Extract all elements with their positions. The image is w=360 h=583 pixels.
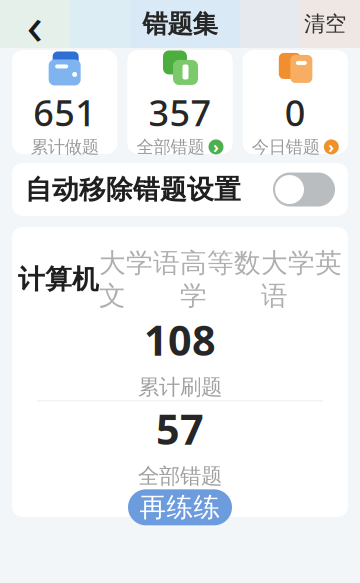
button[interactable]: 清空	[298, 2, 352, 46]
button[interactable]: 高等数学	[180, 247, 261, 312]
staticText: 清空	[304, 11, 346, 37]
staticText: ›	[213, 136, 219, 157]
staticText: 高等数学	[180, 247, 261, 312]
button[interactable]: 0	[243, 50, 348, 154]
staticText: 计算机	[18, 263, 99, 296]
button[interactable]: 自动移除错题设置	[12, 163, 348, 216]
staticText: 108	[144, 312, 216, 367]
button[interactable]: 返回	[8, 2, 62, 46]
button[interactable]: 651	[12, 50, 117, 154]
staticText: 大学英语	[261, 247, 342, 312]
staticText: ‹	[26, 0, 43, 59]
staticText: 再练练	[139, 491, 220, 524]
button[interactable]: 大学英语	[261, 247, 342, 312]
staticText: 大学语文	[99, 247, 180, 312]
staticText: 全部错题	[136, 136, 204, 158]
staticText: 错题集	[142, 8, 217, 39]
button[interactable]: 大学语文	[99, 247, 180, 312]
staticText: 累计刷题	[138, 374, 222, 400]
staticText: 57	[156, 401, 204, 456]
staticText: ›	[328, 136, 334, 157]
staticText: 357	[148, 88, 211, 136]
staticText: 累计做题	[31, 136, 99, 158]
staticText: 0	[285, 88, 306, 136]
staticText: 651	[33, 88, 96, 136]
staticText: 自动移除错题设置	[25, 173, 241, 206]
button[interactable]: 再练练	[128, 489, 232, 525]
staticText: 全部错题	[138, 463, 222, 489]
button[interactable]: 357	[127, 50, 233, 154]
button[interactable]: 计算机	[18, 263, 99, 296]
staticText: 今日错题	[252, 136, 320, 158]
